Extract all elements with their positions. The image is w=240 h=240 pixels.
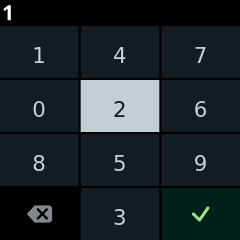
staticText: 5 bbox=[113, 151, 127, 176]
button[interactable]: 3 bbox=[81, 188, 159, 240]
staticText: 7 bbox=[194, 43, 208, 68]
staticText: 1 bbox=[32, 43, 46, 68]
staticText: 2 bbox=[113, 97, 127, 122]
button[interactable]: 5 bbox=[81, 134, 159, 186]
staticText: 8 bbox=[32, 151, 46, 176]
button[interactable]: Delete bbox=[0, 188, 79, 240]
button[interactable]: 7 bbox=[161, 26, 240, 78]
staticText: 6 bbox=[194, 97, 208, 122]
button[interactable]: 0 bbox=[0, 80, 79, 132]
button[interactable]: 6 bbox=[161, 80, 240, 132]
staticText: 4 bbox=[113, 43, 127, 68]
staticText: 0 bbox=[32, 97, 46, 122]
staticText: 9 bbox=[194, 151, 208, 176]
button[interactable]: Confirm bbox=[161, 188, 240, 240]
button[interactable]: 9 bbox=[161, 134, 240, 186]
button[interactable]: 2 bbox=[81, 80, 159, 132]
staticText: 1 bbox=[2, 0, 14, 26]
button[interactable]: 1 bbox=[0, 26, 79, 78]
button[interactable]: 4 bbox=[81, 26, 159, 78]
staticText: 3 bbox=[113, 205, 127, 230]
button[interactable]: 8 bbox=[0, 134, 79, 186]
